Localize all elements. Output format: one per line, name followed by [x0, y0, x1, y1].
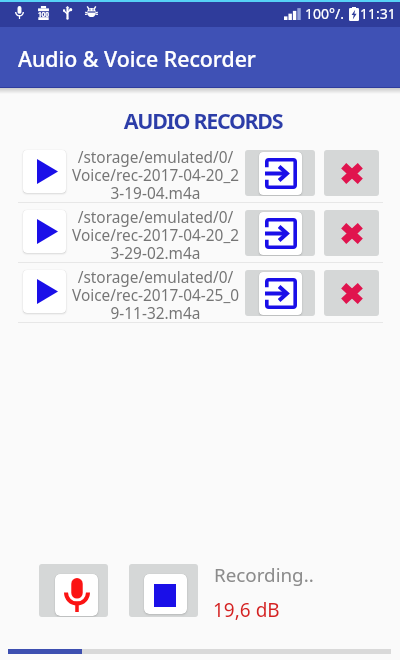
button[interactable]: Delete [324, 150, 379, 196]
staticText: /storage/emulated/0/Voice/rec-2017-04-20… [71, 207, 240, 264]
staticText: AUDIO RECORDS [3, 106, 400, 135]
button[interactable]: Play [23, 270, 66, 313]
staticText: /storage/emulated/0/Voice/rec-2017-04-20… [71, 147, 240, 204]
staticText: 100°/. [305, 4, 344, 23]
button[interactable]: Play [23, 150, 66, 193]
staticText: Audio & Voice Recorder [18, 44, 256, 73]
button[interactable]: Share [245, 270, 315, 316]
staticText: 19,6 dB [213, 597, 280, 623]
button[interactable]: Stop [129, 564, 198, 617]
button[interactable]: Record [39, 564, 108, 617]
button[interactable]: Delete [324, 270, 379, 316]
staticText: /storage/emulated/0/Voice/rec-2017-04-25… [71, 267, 240, 324]
staticText: 100 [38, 10, 49, 19]
button[interactable]: Share [245, 150, 315, 196]
staticText: Recording.. [214, 562, 314, 588]
staticText: 11:31 [360, 4, 396, 23]
button[interactable]: Share [245, 210, 315, 256]
button[interactable]: Play [23, 210, 66, 253]
button[interactable]: Delete [324, 210, 379, 256]
